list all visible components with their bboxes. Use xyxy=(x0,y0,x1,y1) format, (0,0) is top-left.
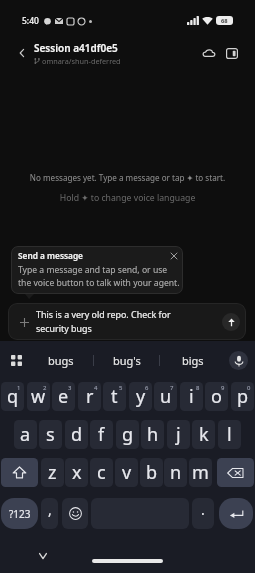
staticText: 1 xyxy=(17,384,21,392)
button[interactable]: h xyxy=(141,420,164,449)
staticText: Send a message xyxy=(18,250,83,261)
staticText: . xyxy=(201,500,205,519)
button[interactable]: o xyxy=(205,382,228,411)
button[interactable]: Emoji xyxy=(62,498,88,529)
button[interactable]: Enter xyxy=(219,498,253,529)
button[interactable]: , xyxy=(41,498,58,529)
button[interactable]: . xyxy=(192,498,214,529)
button[interactable]: Hide keyboard xyxy=(35,548,51,564)
staticText: w xyxy=(31,384,46,409)
button[interactable]: u xyxy=(154,382,177,411)
staticText: 5 xyxy=(119,384,123,392)
staticText: k xyxy=(199,422,209,447)
button[interactable]: ?123 xyxy=(1,498,38,529)
staticText: a xyxy=(20,422,31,447)
button[interactable]: b xyxy=(140,458,163,487)
staticText: f xyxy=(98,422,105,447)
button[interactable]: a xyxy=(14,420,37,449)
button[interactable]: q xyxy=(1,382,24,411)
button[interactable]: bugs xyxy=(28,349,93,371)
staticText: 9 xyxy=(221,384,225,392)
staticText: 0 xyxy=(247,384,251,392)
button[interactable]: m xyxy=(189,458,212,487)
other: Shift xyxy=(12,465,27,480)
button[interactable]: Backspace xyxy=(217,458,254,487)
button[interactable]: Send message xyxy=(222,313,240,331)
staticText: i xyxy=(189,384,194,409)
staticText: v xyxy=(122,460,132,485)
staticText: c xyxy=(97,460,106,485)
button[interactable]: s xyxy=(39,420,62,449)
staticText: bugs xyxy=(48,353,74,368)
staticText: 5:40 xyxy=(22,15,39,27)
staticText: Type a message and tap send, or use the … xyxy=(18,264,181,288)
button[interactable]: Cloud sync xyxy=(199,43,219,63)
button[interactable]: bigs xyxy=(160,349,225,371)
button[interactable]: g xyxy=(116,420,139,449)
staticText: l xyxy=(227,422,232,447)
button[interactable]: p xyxy=(231,382,254,411)
staticText: u xyxy=(160,384,172,409)
staticText: p xyxy=(237,384,249,409)
staticText: b xyxy=(146,460,158,485)
staticText: 2 xyxy=(43,384,47,392)
button[interactable]: i xyxy=(180,382,203,411)
button[interactable]: Shift xyxy=(1,458,38,487)
button[interactable]: c xyxy=(90,458,113,487)
button[interactable]: Voice input xyxy=(229,351,248,370)
staticText: 3 xyxy=(68,384,72,392)
button[interactable]: w xyxy=(27,382,50,411)
button[interactable]: Toggle side panel xyxy=(222,43,242,63)
staticText: 8 xyxy=(196,384,200,392)
staticText: 4 xyxy=(94,384,98,392)
button[interactable]: r xyxy=(78,382,101,411)
staticText: z xyxy=(48,460,57,485)
staticText: h xyxy=(147,422,159,447)
button[interactable]: Back xyxy=(12,43,32,63)
other: Emoji xyxy=(69,507,82,520)
staticText: Session a41df0e5 xyxy=(34,41,118,55)
staticText: omnara/shun-deferred xyxy=(42,56,121,66)
staticText: r xyxy=(86,384,94,409)
staticText: o xyxy=(211,384,222,409)
button[interactable]: d xyxy=(65,420,88,449)
button[interactable]: f xyxy=(90,420,113,449)
button[interactable]: v xyxy=(115,458,138,487)
staticText: j xyxy=(176,422,181,447)
staticText: , xyxy=(48,500,52,519)
button[interactable]: j xyxy=(167,420,190,449)
other: Backspace xyxy=(227,467,244,479)
button[interactable]: n xyxy=(164,458,187,487)
staticText: No messages yet. Type a message or tap ✦… xyxy=(0,172,255,183)
button[interactable]: e xyxy=(52,382,75,411)
staticText: Hold ✦ to change voice language xyxy=(0,192,255,204)
staticText: s xyxy=(46,422,55,447)
staticText: m xyxy=(192,460,209,485)
button[interactable]: Dismiss tip xyxy=(168,250,179,261)
button[interactable]: t xyxy=(103,382,126,411)
button[interactable]: y xyxy=(129,382,152,411)
staticText: bigs xyxy=(182,353,204,368)
button[interactable]: Keyboard options xyxy=(6,350,26,370)
staticText: t xyxy=(111,384,118,409)
button[interactable]: l xyxy=(218,420,241,449)
button[interactable]: z xyxy=(41,458,64,487)
staticText: 6 xyxy=(145,384,149,392)
staticText: q xyxy=(7,384,19,409)
staticText: d xyxy=(71,422,83,447)
staticText: 68 xyxy=(221,17,228,25)
button[interactable]: Add attachment xyxy=(16,314,32,330)
button[interactable]: bug's xyxy=(94,349,159,371)
staticText: n xyxy=(170,460,182,485)
other: Enter xyxy=(229,508,244,520)
staticText: g xyxy=(122,422,134,447)
staticText: y xyxy=(136,384,146,409)
staticText: e xyxy=(58,384,69,409)
staticText: x xyxy=(72,460,82,485)
button[interactable]: k xyxy=(192,420,215,449)
staticText: ?123 xyxy=(9,507,31,521)
button[interactable]: x xyxy=(65,458,88,487)
staticText: This is a very old repo. Check for secur… xyxy=(36,308,198,335)
staticText: bug's xyxy=(113,353,141,368)
